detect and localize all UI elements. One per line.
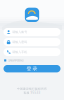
staticText: 中国建设银行版权所有 [17,87,47,90]
button[interactable]: 登 录 [3,65,60,72]
button[interactable]: 请输入密码 [3,38,60,46]
staticText: 登 录 [26,66,37,72]
staticText: 请输入账号 [12,30,27,34]
button[interactable]: 请输入账号 [3,28,60,36]
button[interactable]: 已阅读并同意协议 [0,59,64,62]
staticText: 请输入手机 [12,50,27,54]
staticText: 已阅读并同意协议 [7,59,23,62]
staticText: 客服 95533 [23,91,40,94]
button[interactable]: 请输入手机 [3,48,60,56]
staticText: 请输入密码 [12,40,27,44]
